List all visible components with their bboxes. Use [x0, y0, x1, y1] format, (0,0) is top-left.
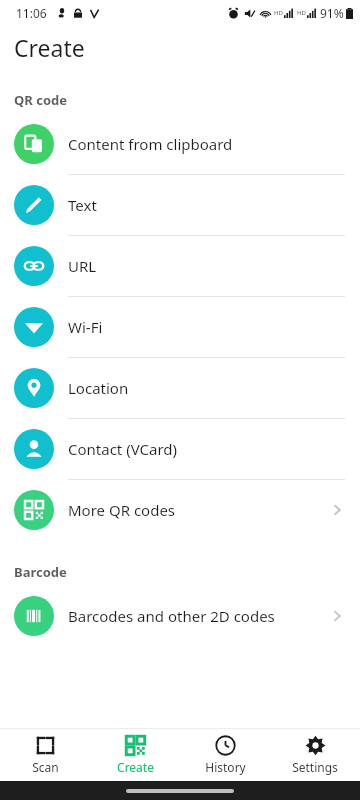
staticText: HD [274, 9, 283, 17]
staticText: Create [14, 32, 85, 63]
staticText: History [205, 759, 246, 775]
button[interactable]: History [180, 729, 270, 781]
staticText: Contact (VCard) [68, 439, 345, 459]
staticText: URL [68, 256, 345, 276]
button[interactable]: Create [90, 729, 180, 781]
button[interactable]: Text [0, 175, 360, 235]
other: Settings [305, 735, 326, 756]
staticText: Create [117, 759, 154, 775]
staticText: More QR codes [68, 500, 329, 520]
staticText: Settings [292, 759, 338, 775]
staticText: Wi-Fi [68, 317, 345, 337]
staticText: Text [68, 195, 345, 215]
other: History [215, 735, 236, 756]
button[interactable]: Location [0, 358, 360, 418]
staticText: Barcode [14, 563, 67, 581]
staticText: Scan [32, 759, 59, 775]
other: Create [125, 735, 146, 756]
button[interactable]: Contact (VCard) [0, 419, 360, 479]
button[interactable]: Barcodes and other 2D codes [0, 586, 360, 646]
button[interactable]: More QR codes [0, 480, 360, 540]
staticText: Content from clipboard [68, 134, 345, 154]
button[interactable]: Wi-Fi [0, 297, 360, 357]
staticText: 91% [320, 5, 344, 21]
button[interactable]: Scan [0, 729, 90, 781]
other: Scan [35, 735, 56, 756]
staticText: HD [297, 9, 306, 17]
button[interactable]: Content from clipboard [0, 114, 360, 174]
staticText: 11:06 [16, 5, 47, 21]
staticText: QR code [14, 91, 68, 109]
staticText: Barcodes and other 2D codes [68, 606, 329, 626]
button[interactable]: URL [0, 236, 360, 296]
staticText: Location [68, 378, 345, 398]
button[interactable]: Settings [270, 729, 360, 781]
